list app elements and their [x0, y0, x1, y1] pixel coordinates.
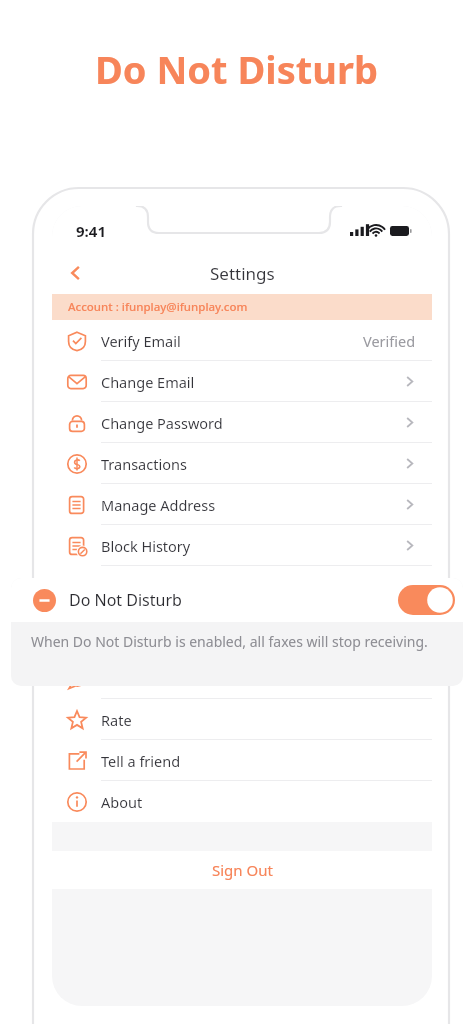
button[interactable]	[52, 607, 432, 648]
button[interactable]: Contact us	[52, 658, 432, 699]
staticText: Block History	[101, 536, 191, 556]
staticText: About	[101, 792, 143, 812]
button[interactable]	[52, 566, 432, 607]
staticText: Verified	[363, 331, 416, 351]
button[interactable]: Change Password	[52, 402, 432, 443]
staticText: Change Password	[101, 413, 223, 433]
button[interactable]: Do Not Disturb toggle	[398, 585, 455, 615]
button[interactable]: Change Email	[52, 361, 432, 402]
button[interactable]: Back	[56, 253, 96, 293]
staticText: Do Not Disturb	[69, 589, 182, 611]
staticText: Rate	[101, 710, 132, 730]
staticText: Do Not Disturb	[95, 43, 378, 95]
button[interactable]: Manage Address	[52, 484, 432, 525]
button[interactable]: Rate	[52, 699, 432, 740]
button[interactable]: Do Not Disturb	[11, 578, 463, 622]
button[interactable]: Sign Out	[52, 851, 432, 889]
button[interactable]: Transactions	[52, 443, 432, 484]
staticText: Manage Address	[101, 495, 216, 515]
button[interactable]: Tell a friend	[52, 740, 432, 781]
button[interactable]: Verify Email	[52, 320, 432, 361]
staticText: Change Email	[101, 372, 195, 392]
staticText: Sign Out	[212, 860, 273, 880]
button[interactable]: About	[52, 781, 432, 822]
staticText: Tell a friend	[101, 751, 181, 771]
staticText: Settings	[210, 262, 275, 285]
staticText: Account : ifunplay@ifunplay.com	[68, 299, 248, 315]
staticText: 9:41	[76, 221, 106, 241]
staticText: When Do Not Disturb is enabled, all faxe…	[31, 632, 428, 651]
staticText: Contact us	[101, 669, 174, 689]
button[interactable]: Block History	[52, 525, 432, 566]
staticText: Transactions	[101, 454, 187, 474]
staticText: Verify Email	[101, 331, 181, 351]
